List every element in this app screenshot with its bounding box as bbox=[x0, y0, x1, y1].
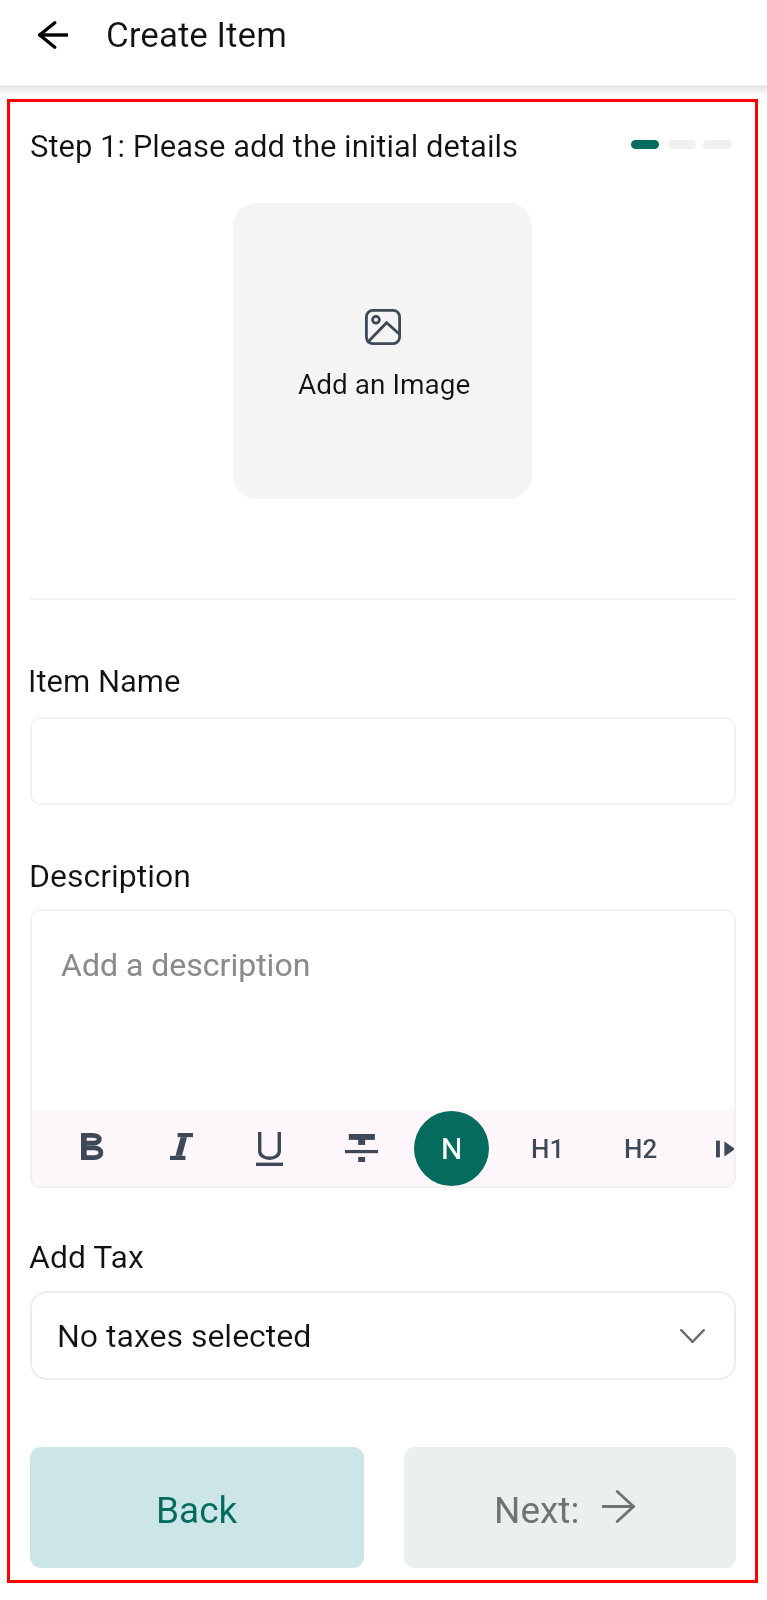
staticText: Create Item bbox=[106, 15, 287, 56]
button[interactable]: Back bbox=[23, 5, 83, 65]
staticText: Description bbox=[29, 857, 191, 895]
staticText: H1 bbox=[531, 1134, 565, 1164]
staticText: No taxes selected bbox=[57, 1317, 312, 1355]
button[interactable]: H2 bbox=[611, 1119, 671, 1179]
staticText: H2 bbox=[624, 1134, 658, 1164]
staticText: Add a description bbox=[61, 946, 311, 984]
button[interactable]: Indent bbox=[698, 1119, 736, 1179]
staticText: Item Name bbox=[28, 663, 181, 699]
staticText: N bbox=[441, 1131, 463, 1166]
button[interactable]: Strikethrough bbox=[331, 1118, 391, 1178]
staticText: Back bbox=[156, 1489, 238, 1532]
button[interactable]: Italic bbox=[151, 1116, 211, 1176]
button[interactable]: Next: bbox=[404, 1447, 736, 1568]
staticText: Add an Image bbox=[298, 368, 471, 401]
button[interactable]: H1 bbox=[518, 1119, 578, 1179]
staticText: Step 1: Please add the initial details bbox=[30, 128, 519, 164]
button[interactable]: Back bbox=[30, 1447, 364, 1568]
button[interactable]: Add an Image bbox=[233, 203, 532, 499]
button[interactable]: No taxes selected bbox=[30, 1291, 736, 1380]
button[interactable]: Add a description bbox=[30, 909, 736, 1110]
staticText: Add Tax bbox=[29, 1238, 144, 1276]
staticText: Next: bbox=[494, 1489, 580, 1532]
button[interactable]: Bold bbox=[61, 1116, 121, 1176]
button[interactable]: Underline bbox=[239, 1119, 299, 1179]
other: Expand bbox=[680, 1329, 705, 1343]
button[interactable]: N bbox=[414, 1111, 489, 1186]
